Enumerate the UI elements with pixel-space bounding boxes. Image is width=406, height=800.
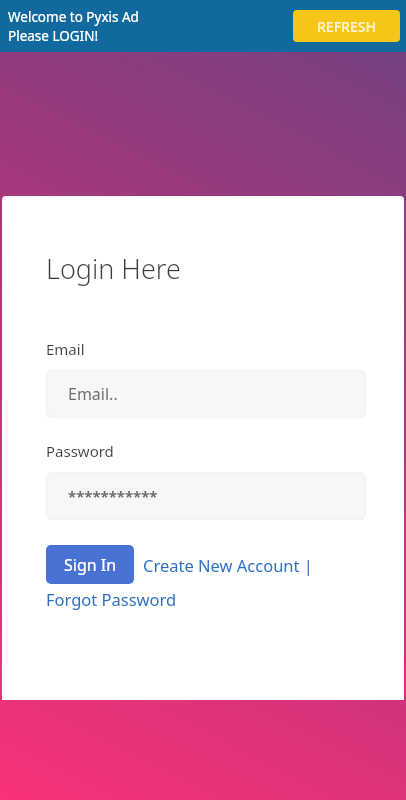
staticText: Password (46, 441, 114, 461)
staticText: Create New Account | (143, 554, 313, 576)
staticText: *********** (68, 486, 158, 506)
staticText: Email (46, 339, 85, 359)
button[interactable]: Forgot Password (46, 588, 177, 610)
button[interactable]: REFRESH (293, 10, 400, 42)
button[interactable]: *********** (46, 472, 366, 520)
staticText: Forgot Password (46, 588, 177, 610)
button[interactable]: Email.. (46, 370, 366, 418)
staticText: Sign In (64, 554, 117, 576)
staticText: Please LOGIN! (8, 27, 99, 45)
staticText: Welcome to Pyxis Ad (8, 8, 139, 26)
button[interactable]: Create New Account | (143, 554, 313, 576)
button[interactable]: Sign In (46, 545, 134, 584)
staticText: Email.. (68, 383, 118, 405)
staticText: Login Here (46, 250, 181, 287)
staticText: REFRESH (317, 17, 376, 36)
